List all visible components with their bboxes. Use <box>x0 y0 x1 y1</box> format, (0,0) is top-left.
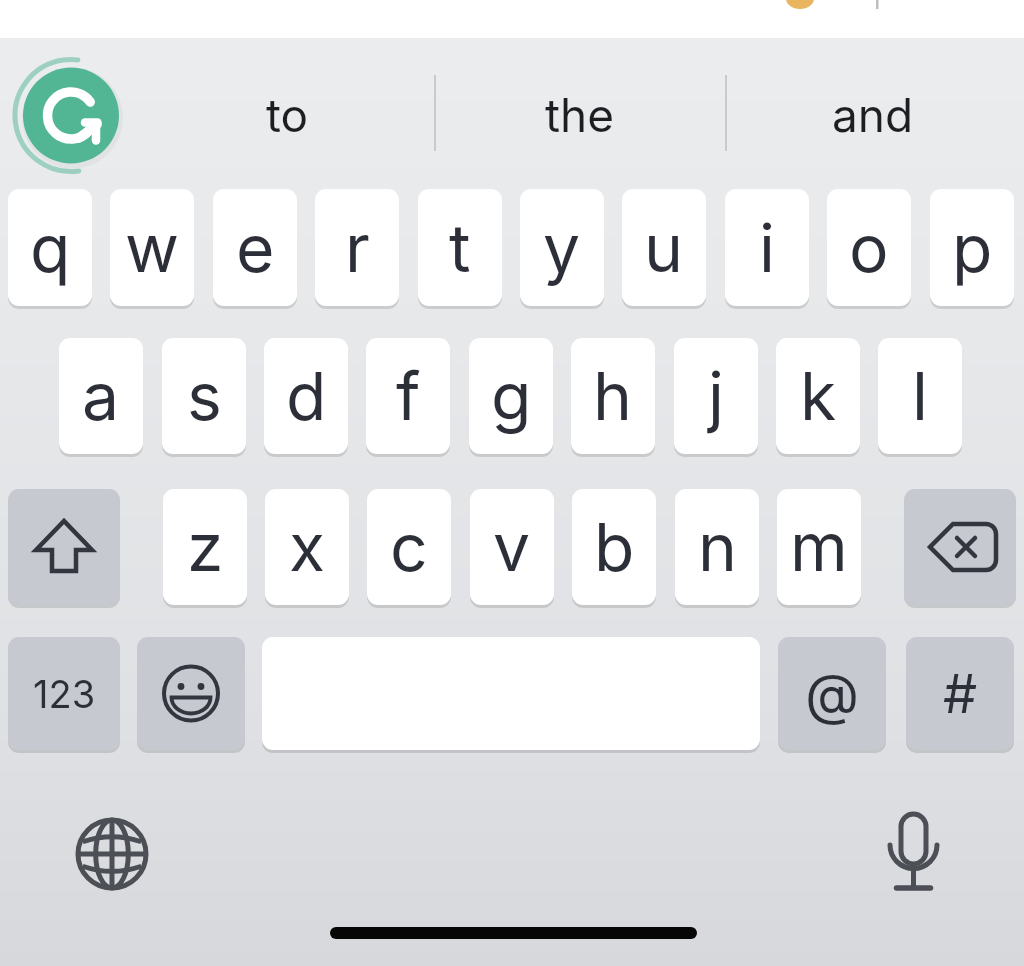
button[interactable] <box>8 489 120 605</box>
staticText: z <box>187 507 224 587</box>
staticText: @ <box>805 660 860 728</box>
staticText: e <box>236 208 275 288</box>
button[interactable]: # <box>906 637 1014 750</box>
staticText: h <box>593 356 633 436</box>
staticText: s <box>187 356 222 436</box>
button[interactable]: d <box>264 338 348 454</box>
button[interactable]: n <box>675 489 759 605</box>
button[interactable] <box>62 804 162 904</box>
staticText: c <box>390 507 428 587</box>
button[interactable] <box>904 489 1016 605</box>
button[interactable]: m <box>777 489 861 605</box>
staticText: l <box>912 356 928 436</box>
button[interactable]: p <box>930 189 1014 306</box>
staticText: t <box>449 208 471 288</box>
staticText: w <box>125 208 180 288</box>
button[interactable]: u <box>622 189 706 306</box>
staticText: j <box>708 356 724 436</box>
staticText: a <box>82 356 120 436</box>
button[interactable]: v <box>470 489 554 605</box>
button[interactable]: h <box>571 338 655 454</box>
staticText: n <box>698 507 737 587</box>
staticText: o <box>849 208 889 288</box>
button[interactable]: t <box>418 189 502 306</box>
staticText: y <box>543 208 581 288</box>
staticText: f <box>396 356 421 436</box>
staticText: v <box>493 507 531 587</box>
staticText: p <box>952 208 993 288</box>
button[interactable]: a <box>59 338 143 454</box>
staticText: to <box>266 87 309 143</box>
staticText: k <box>800 356 837 436</box>
button[interactable]: c <box>367 489 451 605</box>
staticText: and <box>832 87 914 143</box>
staticText: u <box>644 208 684 288</box>
button[interactable]: q <box>8 189 92 306</box>
button[interactable]: b <box>572 489 656 605</box>
button[interactable]: k <box>776 338 860 454</box>
button[interactable]: and <box>726 63 1020 167</box>
staticText: 123 <box>33 671 96 717</box>
staticText: the <box>545 87 615 143</box>
staticText: x <box>289 507 326 587</box>
button[interactable]: o <box>827 189 911 306</box>
button[interactable]: 123 <box>8 637 120 750</box>
button[interactable] <box>137 637 245 750</box>
button[interactable]: e <box>213 189 297 306</box>
button[interactable]: the <box>436 63 724 167</box>
button[interactable] <box>870 800 960 900</box>
button[interactable]: f <box>366 338 450 454</box>
button[interactable]: g <box>469 338 553 454</box>
button[interactable]: j <box>674 338 758 454</box>
button[interactable]: to <box>140 63 434 167</box>
button[interactable]: w <box>110 189 194 306</box>
button[interactable]: i <box>725 189 809 306</box>
button[interactable]: x <box>265 489 349 605</box>
staticText: q <box>30 208 71 288</box>
staticText: i <box>759 208 775 288</box>
button[interactable]: l <box>878 338 962 454</box>
staticText: # <box>943 661 978 726</box>
staticText: b <box>594 507 635 587</box>
staticText: m <box>790 507 848 587</box>
button[interactable]: r <box>315 189 399 306</box>
staticText: r <box>345 208 370 288</box>
staticText: d <box>286 356 327 436</box>
button[interactable]: y <box>520 189 604 306</box>
button[interactable]: @ <box>778 637 886 750</box>
button[interactable]: s <box>162 338 246 454</box>
button[interactable] <box>8 57 124 173</box>
button[interactable]: z <box>163 489 247 605</box>
staticText: g <box>491 356 532 436</box>
